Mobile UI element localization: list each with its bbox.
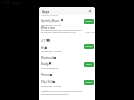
button[interactable]: Open <box>84 62 94 67</box>
staticText: Yesterday 32 MB <box>41 49 62 52</box>
staticText: Yesterday 19 MB <box>41 84 62 87</box>
staticText: Update <box>85 81 93 84</box>
staticText: 4.7 MB <box>41 39 51 43</box>
staticText: Budget <box>41 62 52 66</box>
staticText: Bug fixes and performance improvements <box>41 29 82 32</box>
staticText: Spotify Music <box>41 19 60 23</box>
staticText: Updated the layout of the main screen an… <box>41 90 83 93</box>
staticText: 11:20 <box>2 1 10 5</box>
staticText: Update <box>85 45 93 48</box>
button[interactable]: Update <box>84 80 94 85</box>
button[interactable]: Account <box>88 9 92 13</box>
staticText: Hub <box>41 46 47 50</box>
staticText: to make the app work better for you <box>41 31 76 34</box>
staticText: updates available <box>41 14 59 17</box>
staticText: Show more <box>85 31 95 34</box>
staticText: Update <box>85 20 93 23</box>
staticText: Open <box>86 63 92 66</box>
staticText: Fitness <box>41 73 51 77</box>
staticText: Bluetooth <box>41 56 55 60</box>
staticText: Free <box>53 66 59 69</box>
staticText: fixed several reported issues <box>41 93 69 96</box>
button[interactable]: Update <box>84 44 94 49</box>
staticText: Apps <box>42 10 50 14</box>
button[interactable]: Update <box>84 19 94 24</box>
staticText: What's new <box>41 26 55 29</box>
staticText: Subscribed <box>41 66 56 69</box>
staticText: ● ▲ ▮ <box>13 1 21 5</box>
staticText: Play Skills <box>41 80 55 84</box>
staticText: Yesterday 45 MB <box>41 23 62 26</box>
button[interactable] <box>39 7 95 15</box>
